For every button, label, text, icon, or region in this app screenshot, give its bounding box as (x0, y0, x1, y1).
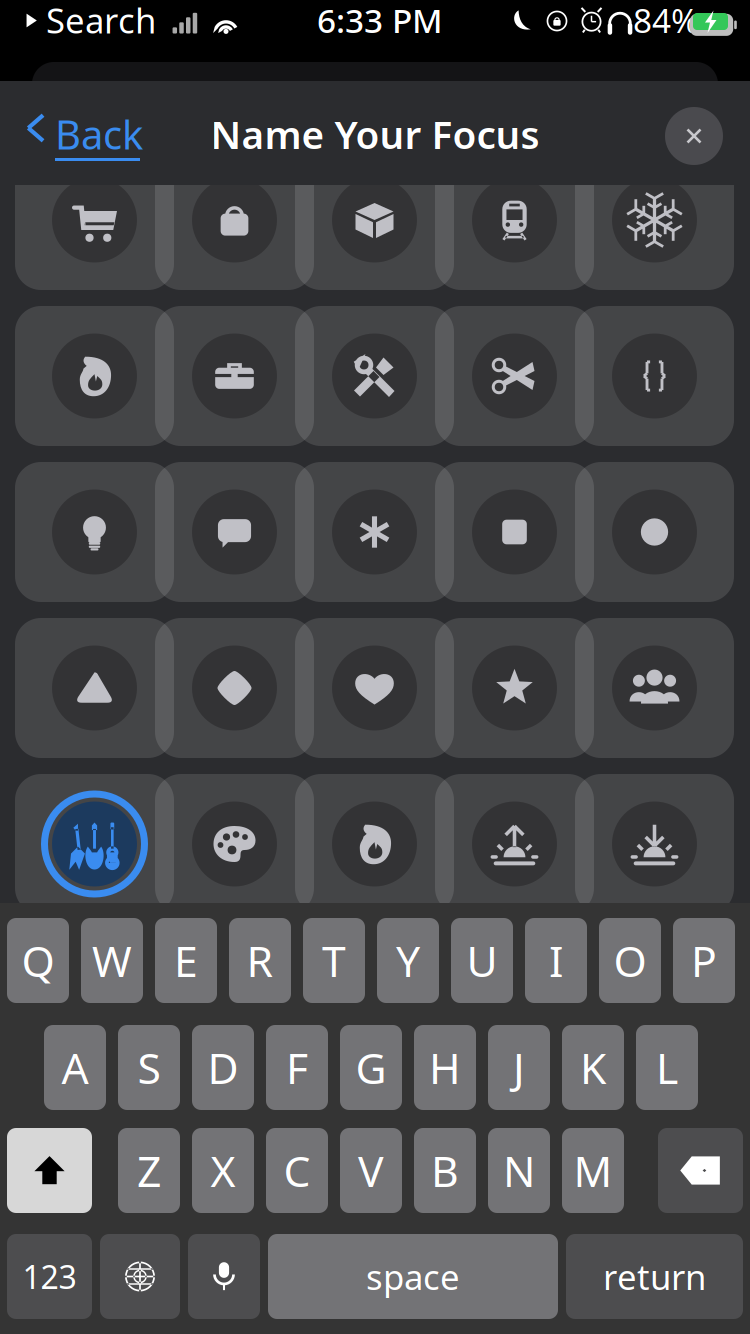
button[interactable]: C (266, 1128, 328, 1213)
button[interactable]: U (451, 918, 513, 1003)
staticText: X (210, 1142, 235, 1199)
staticText: 84% (633, 0, 699, 42)
button[interactable]: Train (435, 150, 594, 290)
button[interactable]: M (562, 1128, 624, 1213)
button[interactable]: S (118, 1025, 180, 1110)
button[interactable]: G (340, 1025, 402, 1110)
staticText: H (429, 1039, 461, 1096)
button[interactable]: E (155, 918, 217, 1003)
button[interactable]: space (268, 1234, 558, 1319)
button[interactable]: Sunrise (435, 774, 594, 914)
button[interactable]: Delete (658, 1128, 743, 1213)
staticText: Search (46, 0, 156, 43)
button[interactable]: L (636, 1025, 698, 1110)
staticText: F (286, 1039, 308, 1096)
staticText: S (137, 1039, 160, 1096)
button[interactable]: Tools (295, 306, 454, 446)
staticText: 123 (22, 1255, 76, 1298)
button[interactable]: Circle (575, 462, 734, 602)
staticText: 6:33 PM (317, 0, 443, 42)
button[interactable]: Bag (155, 150, 314, 290)
staticText: T (322, 932, 346, 989)
staticText: J (513, 1039, 525, 1096)
button[interactable]: Diamond (155, 618, 314, 758)
button[interactable]: F (266, 1025, 328, 1110)
button[interactable]: I (525, 918, 587, 1003)
button[interactable]: Braces (575, 306, 734, 446)
staticText: K (580, 1039, 606, 1096)
button[interactable]: Cart (15, 150, 174, 290)
button[interactable]: K (562, 1025, 624, 1110)
button[interactable]: Lightbulb (15, 462, 174, 602)
button[interactable]: A (44, 1025, 106, 1110)
staticText: R (246, 932, 273, 989)
button[interactable]: J (488, 1025, 550, 1110)
button[interactable]: Next keyboard (100, 1234, 180, 1319)
button[interactable]: Q (7, 918, 69, 1003)
staticText: W (92, 932, 132, 989)
button[interactable]: H (414, 1025, 476, 1110)
button[interactable]: Dictation (188, 1234, 260, 1319)
button[interactable]: Square (435, 462, 594, 602)
button[interactable]: Briefcase (155, 306, 314, 446)
button[interactable]: B (414, 1128, 476, 1213)
staticText: L (656, 1039, 678, 1096)
staticText: C (283, 1142, 310, 1199)
button[interactable]: Asterisk (295, 462, 454, 602)
staticText: O (613, 932, 646, 989)
staticText: V (358, 1142, 384, 1199)
staticText: P (691, 932, 717, 989)
button[interactable]: Heart (295, 618, 454, 758)
button[interactable]: Close (665, 107, 723, 165)
staticText: I (549, 932, 563, 989)
button[interactable]: return (566, 1234, 743, 1319)
staticText: A (61, 1039, 88, 1096)
button[interactable]: People (575, 618, 734, 758)
button[interactable]: Star (435, 618, 594, 758)
button[interactable]: Flame (15, 306, 174, 446)
button[interactable]: Shift (7, 1128, 92, 1213)
staticText: E (174, 932, 198, 989)
staticText: Name Your Focus (210, 108, 539, 160)
button[interactable]: Fire (295, 774, 454, 914)
staticText: Back (55, 107, 143, 160)
button[interactable]: N (488, 1128, 550, 1213)
staticText: Y (396, 932, 420, 989)
button[interactable]: Y (377, 918, 439, 1003)
button[interactable]: Guitars (15, 774, 174, 914)
button[interactable]: Message (155, 462, 314, 602)
button[interactable]: Triangle (15, 618, 174, 758)
button[interactable]: T (303, 918, 365, 1003)
staticText: D (207, 1039, 238, 1096)
staticText: B (431, 1142, 459, 1199)
staticText: N (503, 1142, 535, 1199)
button[interactable]: Snowflake (575, 150, 734, 290)
button[interactable]: Scissors (435, 306, 594, 446)
button[interactable]: P (673, 918, 735, 1003)
staticText: U (466, 932, 497, 989)
button[interactable]: 123 (7, 1234, 92, 1319)
staticText: G (355, 1039, 386, 1096)
button[interactable]: Palette (155, 774, 314, 914)
staticText: Z (137, 1142, 161, 1199)
button[interactable]: X (192, 1128, 254, 1213)
button[interactable]: Box (295, 150, 454, 290)
button[interactable]: O (599, 918, 661, 1003)
staticText: return (603, 1253, 706, 1299)
staticText: space (366, 1253, 460, 1299)
staticText: M (573, 1142, 612, 1199)
button[interactable]: V (340, 1128, 402, 1213)
staticText: Q (21, 932, 54, 989)
button[interactable]: Z (118, 1128, 180, 1213)
button[interactable]: W (81, 918, 143, 1003)
button[interactable]: D (192, 1025, 254, 1110)
button[interactable]: R (229, 918, 291, 1003)
button[interactable]: Sunset (575, 774, 734, 914)
